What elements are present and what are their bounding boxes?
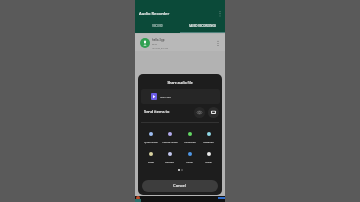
button[interactable]: WhatsApp [180, 132, 199, 143]
button[interactable]: Drive [141, 152, 160, 163]
staticText: Quick Share [144, 140, 158, 143]
staticText: Discord [165, 160, 174, 163]
staticText: Share audio file [138, 80, 222, 85]
staticText: Nearby Share [162, 140, 178, 143]
button[interactable]: SAVED RECORDINGS [180, 19, 225, 33]
button[interactable]: Gmail [199, 152, 218, 163]
staticText: Audio Recorder [139, 11, 170, 17]
button[interactable]: Item options [214, 39, 222, 47]
button[interactable]: Discord [160, 152, 179, 163]
staticText: hello.3gp [152, 38, 165, 42]
button[interactable]: Chats [180, 152, 199, 163]
staticText: 00:03 [152, 43, 157, 46]
staticText: SAVED RECORDINGS [189, 24, 216, 28]
staticText: Gmail [205, 160, 212, 163]
button[interactable]: Telegram [199, 132, 218, 143]
button[interactable]: Nearby Share [160, 132, 179, 143]
staticText: Chats [186, 160, 193, 163]
button[interactable]: Cancel [142, 180, 218, 192]
staticText: Cancel [173, 183, 187, 189]
button[interactable]: Quick Share [141, 132, 160, 143]
staticText: 12/17/23, 8:41 PM [152, 47, 168, 50]
button[interactable]: More options [216, 7, 224, 15]
button[interactable]: RECORD [135, 19, 180, 33]
button[interactable]: hello.3gp [141, 89, 220, 104]
staticText: Telegram [203, 140, 214, 143]
button[interactable]: Cast [208, 107, 219, 118]
button[interactable]: hello.3gp [135, 34, 225, 51]
staticText: hello.3gp [160, 95, 171, 98]
staticText: Send items to [144, 109, 170, 114]
staticText: Drive [148, 160, 154, 163]
staticText: WhatsApp [184, 140, 196, 143]
staticText: RECORD [152, 24, 163, 27]
button[interactable]: Preview [194, 107, 205, 118]
